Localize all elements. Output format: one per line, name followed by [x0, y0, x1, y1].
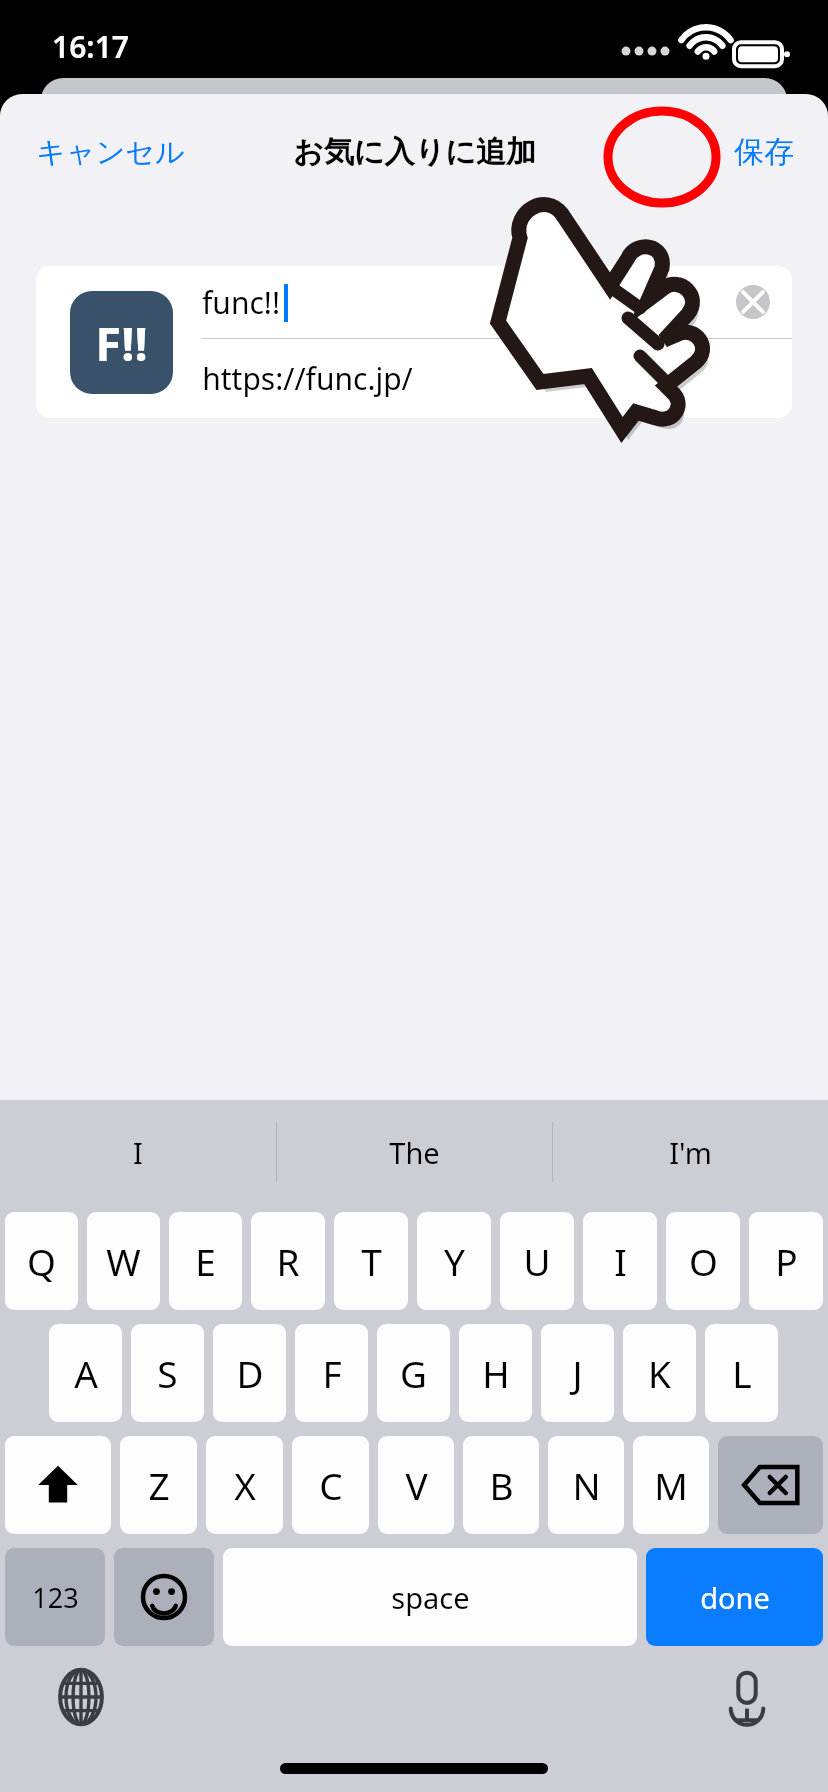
button[interactable]: Backspace — [718, 1436, 823, 1534]
staticText: L — [732, 1348, 752, 1398]
button[interactable]: Emoji — [114, 1548, 214, 1646]
staticText: 保存 — [734, 133, 794, 171]
staticText: W — [106, 1236, 141, 1286]
button[interactable]: V — [378, 1436, 454, 1534]
button[interactable]: B — [463, 1436, 539, 1534]
button[interactable]: F!! — [36, 266, 792, 418]
staticText: 16:17 — [52, 26, 129, 67]
staticText: I — [133, 1133, 143, 1172]
staticText: I'm — [669, 1133, 712, 1172]
staticText: Z — [148, 1460, 170, 1510]
staticText: C — [319, 1460, 343, 1510]
button[interactable]: space — [223, 1548, 637, 1646]
button[interactable]: H — [459, 1324, 532, 1422]
button[interactable]: U — [500, 1212, 574, 1310]
staticText: O — [689, 1236, 718, 1286]
staticText: func!! — [202, 282, 280, 323]
button[interactable]: Clear text — [736, 285, 770, 319]
staticText: K — [648, 1348, 671, 1398]
button[interactable]: Change keyboard — [48, 1664, 114, 1730]
button[interactable]: Z — [120, 1436, 197, 1534]
staticText: E — [195, 1236, 216, 1286]
staticText: D — [236, 1348, 264, 1398]
staticText: N — [572, 1460, 601, 1510]
staticText: 123 — [32, 1579, 79, 1616]
button[interactable]: W — [87, 1212, 160, 1310]
staticText: A — [74, 1348, 98, 1398]
button[interactable]: 保存 — [720, 121, 808, 183]
staticText: Q — [27, 1236, 56, 1286]
button[interactable]: Y — [417, 1212, 491, 1310]
button[interactable]: E — [169, 1212, 242, 1310]
button[interactable]: X — [206, 1436, 283, 1534]
staticText: F!! — [95, 311, 148, 375]
button[interactable]: I — [583, 1212, 657, 1310]
staticText: P — [775, 1236, 798, 1286]
staticText: B — [489, 1460, 514, 1510]
button[interactable]: K — [623, 1324, 696, 1422]
button[interactable]: done — [646, 1548, 823, 1646]
button[interactable]: T — [334, 1212, 408, 1310]
staticText: space — [391, 1578, 470, 1617]
button[interactable]: D — [213, 1324, 286, 1422]
button[interactable]: I — [0, 1100, 276, 1204]
button[interactable]: P — [749, 1212, 823, 1310]
button[interactable]: 123 — [5, 1548, 105, 1646]
staticText: J — [572, 1348, 583, 1398]
staticText: お気に入りに追加 — [293, 133, 536, 171]
staticText: X — [234, 1460, 256, 1510]
button[interactable]: The — [277, 1100, 552, 1204]
button[interactable]: Dictation — [714, 1664, 780, 1730]
staticText: Y — [444, 1236, 465, 1286]
button[interactable]: J — [541, 1324, 614, 1422]
staticText: https://func.jp/ — [202, 358, 413, 399]
button[interactable]: S — [131, 1324, 204, 1422]
staticText: S — [157, 1348, 178, 1398]
button[interactable]: O — [666, 1212, 740, 1310]
button[interactable]: C — [292, 1436, 369, 1534]
staticText: V — [405, 1460, 428, 1510]
staticText: T — [361, 1236, 382, 1286]
staticText: F — [322, 1348, 342, 1398]
button[interactable]: キャンセル — [18, 122, 203, 183]
staticText: M — [654, 1460, 688, 1510]
button[interactable]: Shift — [5, 1436, 111, 1534]
staticText: done — [700, 1578, 770, 1617]
staticText: I — [614, 1236, 627, 1286]
staticText: H — [482, 1348, 510, 1398]
button[interactable]: N — [548, 1436, 624, 1534]
button[interactable]: A — [49, 1324, 122, 1422]
staticText: The — [389, 1133, 440, 1172]
button[interactable]: F — [295, 1324, 368, 1422]
staticText: G — [400, 1348, 427, 1398]
button[interactable]: R — [251, 1212, 325, 1310]
button[interactable]: G — [377, 1324, 450, 1422]
button[interactable]: I'm — [553, 1100, 828, 1204]
staticText: U — [523, 1236, 551, 1286]
button[interactable]: M — [633, 1436, 709, 1534]
button[interactable]: L — [705, 1324, 778, 1422]
staticText: R — [276, 1236, 300, 1286]
staticText: キャンセル — [36, 134, 185, 171]
button[interactable]: Q — [5, 1212, 78, 1310]
